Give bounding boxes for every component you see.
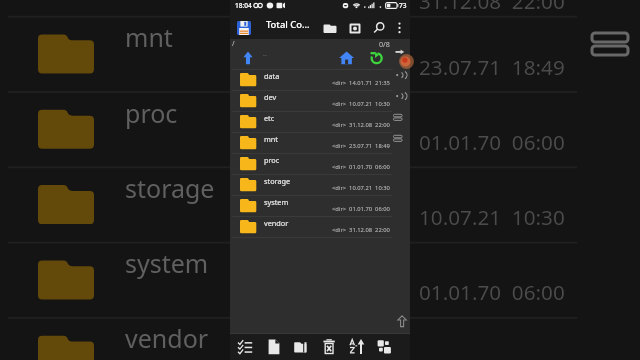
button[interactable]: Scroll to top [396, 314, 410, 328]
staticText: 0/8 [379, 39, 390, 48]
button[interactable]: Search [370, 19, 388, 37]
staticText: <dir> 23.07.71 18:49 [332, 142, 390, 150]
button[interactable]: Home [338, 49, 356, 67]
button[interactable]: Refresh [368, 49, 386, 67]
button[interactable]: dev [230, 90, 410, 111]
button[interactable]: Sort [347, 336, 369, 358]
button[interactable]: storage [230, 174, 410, 195]
staticText: system [125, 246, 209, 280]
button[interactable]: New folder [291, 336, 313, 358]
staticText: <dir> 01.01.70 06:00 [332, 205, 390, 213]
button[interactable]: Delete [319, 336, 341, 358]
staticText: <dir> 01.01.70 06:00 [332, 163, 390, 171]
button[interactable]: Select [235, 336, 257, 358]
button[interactable]: proc [230, 153, 410, 174]
staticText: 73 [399, 1, 407, 10]
staticText: / [232, 39, 235, 48]
button[interactable]: Properties [375, 336, 397, 358]
staticText: <dir> 31.12.08 22:00 [332, 121, 390, 129]
button[interactable]: Storage [346, 19, 364, 37]
staticText: dev [264, 92, 277, 102]
staticText: storage [264, 176, 291, 186]
button[interactable]: vendor [230, 216, 410, 237]
button[interactable]: data [230, 69, 410, 90]
staticText: proc [125, 96, 178, 130]
button[interactable]: etc [230, 111, 410, 132]
button[interactable]: mnt [230, 132, 410, 153]
staticText: 01.01.70 06:00 [419, 128, 565, 156]
staticText: <dir> 14.01.71 21:35 [332, 79, 390, 87]
staticText: Total Co... [266, 18, 310, 31]
staticText: mnt [264, 134, 278, 144]
staticText: 23.07.71 18:49 [419, 53, 565, 81]
button[interactable]: More options [391, 19, 409, 37]
staticText: storage [125, 171, 215, 205]
staticText: vendor [264, 218, 289, 228]
staticText: 18:04 [235, 1, 252, 10]
staticText: etc [264, 113, 275, 123]
staticText: 31.12.08 22:00 [419, 0, 565, 15]
staticText: proc [264, 155, 280, 165]
staticText: vendor [125, 321, 209, 355]
staticText: 10.07.21 10:30 [419, 203, 565, 231]
staticText: <dir> 31.12.08 22:00 [332, 226, 390, 234]
button[interactable]: system [230, 195, 410, 216]
button[interactable]: New file [263, 336, 285, 358]
staticText: system [264, 197, 289, 207]
staticText: 01.01.70 06:00 [419, 278, 565, 306]
staticText: .. [263, 49, 267, 59]
staticText: <dir> 10.07.21 10:30 [332, 184, 390, 192]
button[interactable]: Open folder [321, 19, 339, 37]
staticText: mnt [125, 20, 173, 54]
staticText: data [264, 71, 280, 81]
button[interactable]: Up one level [240, 49, 256, 65]
staticText: <dir> 10.07.21 10:30 [332, 100, 390, 108]
